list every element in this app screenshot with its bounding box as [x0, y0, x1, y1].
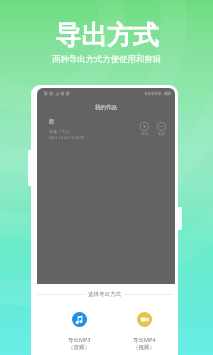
button[interactable]: 更多	[156, 122, 167, 136]
staticText: 导出方式	[55, 19, 159, 52]
staticText: 两种导出方式方便使用和剪辑	[52, 54, 162, 65]
staticText: 想	[49, 118, 54, 124]
button[interactable]: 导出MP4	[114, 312, 174, 351]
staticText: 导出	[141, 132, 148, 136]
staticText: （音频）	[68, 344, 90, 351]
staticText: 音频 | 大小	[49, 129, 70, 134]
button[interactable]: 导出MP3	[49, 312, 109, 351]
staticText: 2021-12-24 11:14:00	[49, 135, 84, 140]
staticText: 更多	[158, 132, 165, 136]
staticText: 我的作品	[95, 104, 117, 111]
staticText: （视频）	[133, 344, 155, 351]
staticText: 导出MP4	[133, 336, 156, 344]
staticText: 选择导出方式	[88, 291, 121, 298]
staticText: 导出MP3	[68, 336, 91, 344]
button[interactable]: 导出	[139, 122, 150, 136]
